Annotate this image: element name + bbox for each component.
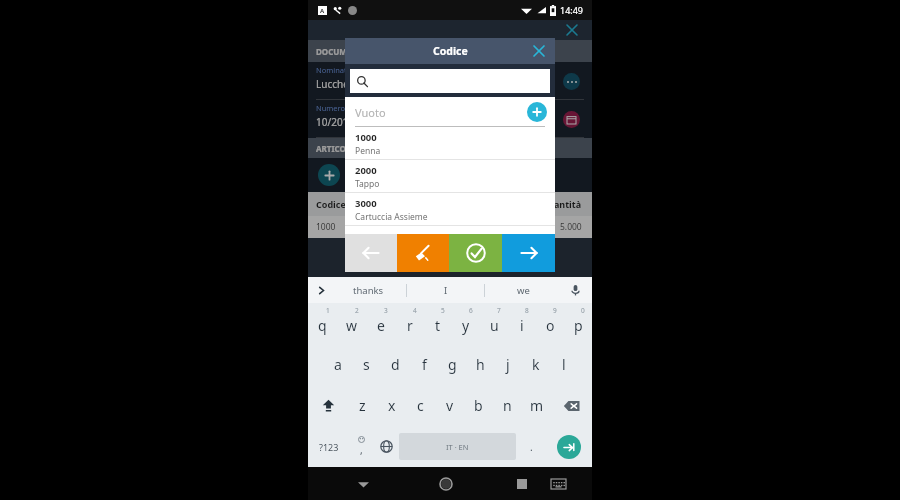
staticText: 9 <box>553 306 557 315</box>
button[interactable]: s <box>352 344 381 385</box>
staticText: d <box>391 355 400 374</box>
button[interactable]: g <box>438 344 466 385</box>
button[interactable]: d <box>381 344 410 385</box>
button[interactable]: 0 <box>564 303 592 344</box>
button[interactable]: Back <box>345 234 397 272</box>
staticText: s <box>363 355 370 374</box>
button[interactable]: Back <box>350 471 376 497</box>
button[interactable]: k <box>522 344 550 385</box>
button[interactable]: j <box>494 344 522 385</box>
button[interactable]: Vuoto <box>345 97 555 127</box>
button[interactable]: z <box>348 385 377 426</box>
staticText: Penna <box>356 221 382 233</box>
button[interactable]: m <box>522 385 551 426</box>
button[interactable]: Add new <box>527 102 547 122</box>
staticText: 7 <box>497 306 501 315</box>
staticText: u <box>490 316 499 335</box>
button[interactable]: b <box>464 385 493 426</box>
button[interactable]: 2000 <box>345 160 555 193</box>
button[interactable]: v <box>435 385 464 426</box>
staticText: Codice <box>316 198 371 210</box>
button[interactable]: 3 <box>366 303 395 344</box>
button[interactable]: 7 <box>480 303 508 344</box>
staticText: 1000 <box>316 221 336 233</box>
button[interactable]: Clear <box>397 234 449 272</box>
button[interactable]: Backspace <box>551 385 592 426</box>
staticText: IT · EN <box>446 442 469 452</box>
button[interactable]: 3000 <box>345 193 555 226</box>
button[interactable]: I <box>407 277 484 303</box>
staticText: p <box>574 316 583 335</box>
button[interactable]: Forward <box>502 234 555 272</box>
staticText: Cartuccia Assieme <box>355 211 428 223</box>
button[interactable]: 4 <box>395 303 424 344</box>
staticText: h <box>476 355 485 374</box>
button[interactable]: 1000 <box>345 127 555 160</box>
staticText: 1000 <box>355 131 377 144</box>
staticText: l <box>562 355 566 374</box>
button[interactable]: More suggestions <box>312 281 330 299</box>
button[interactable]: Confirm <box>449 234 502 272</box>
staticText: w <box>346 316 358 335</box>
button[interactable]: Close dialog <box>529 41 549 61</box>
staticText: g <box>448 355 457 374</box>
staticText: r <box>407 316 413 335</box>
staticText: ?123 <box>319 441 339 453</box>
staticText: 3 <box>384 306 388 315</box>
staticText: t <box>435 316 441 335</box>
button[interactable]: x <box>377 385 406 426</box>
staticText: 2 <box>355 306 359 315</box>
button[interactable]: Keyboard switch <box>545 471 571 497</box>
button[interactable]: 8 <box>508 303 536 344</box>
button[interactable]: Recent apps <box>509 471 535 497</box>
button[interactable]: 1 <box>308 303 337 344</box>
button[interactable]: l <box>550 344 578 385</box>
button[interactable]: h <box>466 344 494 385</box>
staticText: y <box>462 316 470 335</box>
staticText: i <box>520 316 524 335</box>
button[interactable]: 9 <box>536 303 564 344</box>
staticText: b <box>474 396 483 415</box>
staticText: z <box>359 396 366 415</box>
staticText: j <box>506 355 510 374</box>
staticText: , <box>360 443 363 457</box>
button[interactable]: c <box>406 385 435 426</box>
button[interactable]: Voice input <box>566 281 584 299</box>
button[interactable]: Enter <box>557 435 581 459</box>
staticText: e <box>377 316 385 335</box>
button[interactable]: n <box>493 385 522 426</box>
staticText: Codice <box>433 44 468 58</box>
button[interactable]: Close <box>562 20 582 40</box>
staticText: n <box>503 396 512 415</box>
button[interactable]: 6 <box>452 303 480 344</box>
staticText: m <box>530 396 544 415</box>
staticText: we <box>517 284 530 297</box>
button[interactable]: thanks <box>330 277 406 303</box>
button[interactable]: Nominativo <box>563 73 580 90</box>
staticText: DOCUMENTO <box>316 46 369 57</box>
staticText: f <box>422 355 427 374</box>
staticText: ARTICOLI <box>316 143 354 154</box>
button[interactable]: 2 <box>337 303 366 344</box>
button[interactable]: Shift <box>308 385 348 426</box>
button[interactable]: Numero / Anno <box>563 111 580 128</box>
staticText: k <box>532 355 540 374</box>
button[interactable]: Add <box>318 164 340 186</box>
staticText: Pz <box>528 221 538 233</box>
button[interactable]: 5 <box>424 303 452 344</box>
button[interactable]: . <box>516 426 546 467</box>
button[interactable] <box>350 69 550 93</box>
button[interactable]: f <box>410 344 438 385</box>
staticText: 0 <box>581 306 585 315</box>
staticText: 5.000 <box>560 221 582 233</box>
button[interactable]: Home <box>433 471 459 497</box>
staticText: Penna <box>355 145 381 157</box>
button[interactable]: Change language <box>374 426 399 467</box>
staticText: Quantità <box>541 198 582 210</box>
button[interactable]: ?123 <box>308 426 349 467</box>
button[interactable]: a <box>323 344 352 385</box>
button[interactable]: we <box>485 277 562 303</box>
button[interactable]: Emoji and comma <box>349 426 374 467</box>
button[interactable]: Space <box>399 433 516 460</box>
button[interactable]: Edit <box>348 164 370 186</box>
